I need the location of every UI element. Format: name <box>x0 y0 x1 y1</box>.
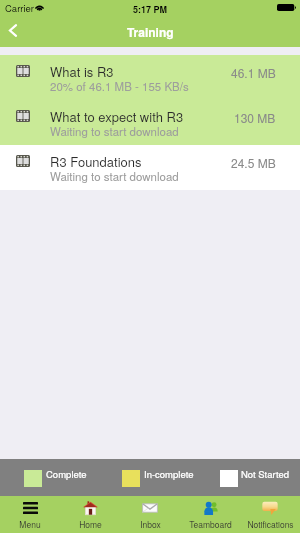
button[interactable]: Menu <box>0 496 60 533</box>
staticText: R3 Foundations <box>50 152 142 171</box>
staticText: Menu <box>19 518 41 530</box>
button[interactable]: What is R3 <box>0 55 300 100</box>
staticText: Home <box>79 518 102 530</box>
staticText: Not Started <box>241 467 290 481</box>
staticText: 24.5 MB <box>231 154 276 171</box>
button[interactable]: What to expect with R3 <box>0 100 300 145</box>
staticText: Complete <box>46 467 87 481</box>
staticText: 20% of 46.1 MB - 155 KB/s <box>50 78 189 94</box>
staticText: What to expect with R3 <box>50 107 184 126</box>
staticText: Teamboard <box>189 518 232 530</box>
staticText: Waiting to start download <box>50 168 179 184</box>
staticText: Carrier <box>5 1 35 15</box>
staticText: Inbox <box>140 518 161 530</box>
staticText: 46.1 MB <box>231 64 276 81</box>
button[interactable]: Teamboard <box>180 496 240 533</box>
button[interactable]: Back <box>0 20 28 47</box>
button[interactable]: R3 Foundations <box>0 145 300 190</box>
button[interactable]: Notifications <box>240 496 300 533</box>
staticText: In-complete <box>144 467 194 481</box>
staticText: 5:17 PM <box>133 3 168 16</box>
staticText: Training <box>127 23 174 40</box>
button[interactable]: Home <box>60 496 120 533</box>
staticText: What is R3 <box>50 62 114 81</box>
staticText: Waiting to start download <box>50 123 179 139</box>
button[interactable]: Inbox <box>120 496 180 533</box>
staticText: 130 MB <box>234 109 276 126</box>
staticText: Notifications <box>247 518 294 530</box>
